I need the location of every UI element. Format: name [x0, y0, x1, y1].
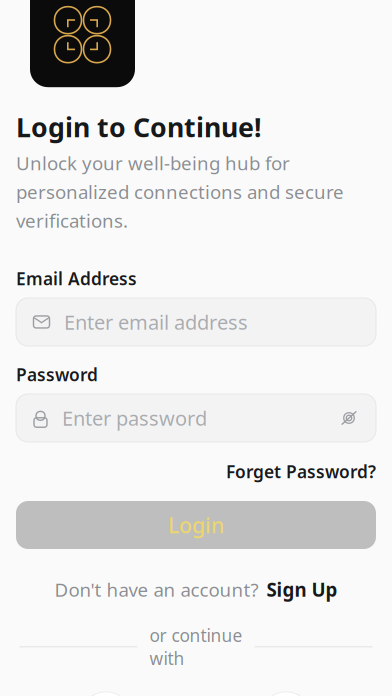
staticText: Login to Continue! — [16, 109, 262, 145]
button[interactable]: Continue with Google — [260, 692, 312, 696]
staticText: Sign Up — [266, 577, 337, 602]
staticText: Password — [16, 363, 98, 386]
staticText: Forget Password? — [226, 460, 376, 483]
button[interactable]: Continue with Apple — [80, 692, 132, 696]
staticText: Login — [168, 511, 224, 539]
staticText: Don't have an account? — [54, 577, 258, 602]
button[interactable]: Show password — [331, 403, 359, 433]
staticText: or continue with — [149, 624, 242, 670]
staticText: Enter email address — [64, 309, 248, 335]
staticText: Enter password — [62, 405, 207, 431]
staticText: Unlock your well-being hub for personali… — [16, 151, 344, 233]
button[interactable]: Login — [16, 501, 376, 549]
button[interactable]: Forget Password? — [226, 456, 376, 487]
staticText: Email Address — [16, 267, 137, 290]
button[interactable]: Sign Up — [266, 577, 337, 602]
